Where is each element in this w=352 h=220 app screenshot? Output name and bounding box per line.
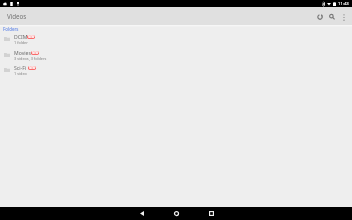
staticText: Sci-Fi <box>14 64 27 71</box>
staticText: DCIM <box>14 33 28 40</box>
staticText: NEW <box>29 66 36 70</box>
button[interactable]: More options <box>338 11 350 23</box>
staticText: Videos <box>7 12 27 20</box>
button[interactable]: Refresh <box>314 11 326 23</box>
staticText: 1 folder <box>14 40 28 45</box>
button[interactable]: Recents <box>205 207 218 220</box>
staticText: Folders <box>3 26 19 32</box>
button[interactable]: Movies <box>0 48 352 63</box>
button[interactable]: Sci-Fi <box>0 63 352 78</box>
button[interactable]: Back <box>135 207 148 220</box>
button[interactable]: DCIM <box>0 32 352 47</box>
staticText: NEW <box>28 35 35 39</box>
staticText: NEW <box>32 51 39 55</box>
staticText: 1 video <box>14 71 27 76</box>
staticText: Movies <box>14 49 31 56</box>
button[interactable]: Home <box>170 207 183 220</box>
button[interactable]: Search <box>326 11 338 23</box>
staticText: 3 videos, 3 folders <box>14 56 47 61</box>
staticText: 11:43 <box>338 1 349 7</box>
